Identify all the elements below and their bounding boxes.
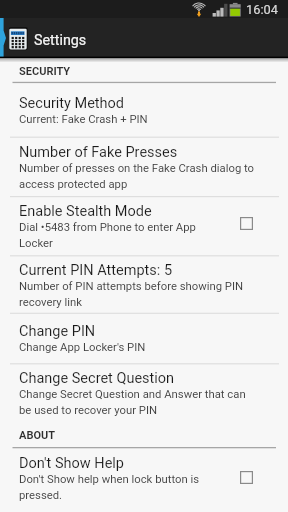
staticText: Enable Stealth Mode [19,203,152,220]
staticText: Settings [34,32,87,49]
button[interactable]: Don't Show Help [0,447,288,512]
staticText: Change Secret Question [19,370,175,387]
button[interactable]: Toggle Enable Stealth Mode [233,210,259,236]
staticText: Number of presses on the Fake Crash dial… [19,162,257,191]
staticText: Change PIN [19,323,96,340]
staticText: Don't Show Help [19,455,124,472]
staticText: Dial •5483 from Phone to enter App Locke… [19,221,214,250]
button[interactable]: Toggle Don't Show Help [233,464,259,490]
staticText: Number of PIN attempts before showing PI… [19,280,257,309]
staticText: ABOUT [19,429,56,442]
staticText: Don't Show help when lock button is pres… [19,473,214,502]
staticText: Number of Fake Presses [19,144,178,161]
staticText: Security Method [19,95,125,112]
button[interactable]: Enable Stealth Mode [0,196,288,255]
staticText: SECURITY [19,65,71,78]
button[interactable]: Security Method [0,82,288,137]
button[interactable]: Number of Fake Presses [0,137,288,196]
staticText: Change Secret Question and Answer that c… [19,388,257,417]
staticText: Change App Locker's PIN [19,341,146,354]
button[interactable]: Navigate up [0,18,288,58]
staticText: 16:04 [246,2,278,17]
staticText: Current: Fake Crash + PIN [19,113,148,126]
staticText: Current PIN Attempts: 5 [19,262,173,279]
button[interactable]: Current PIN Attempts: 5 [0,255,288,313]
button[interactable]: Change PIN [0,313,288,363]
button[interactable]: Change Secret Question [0,363,288,422]
